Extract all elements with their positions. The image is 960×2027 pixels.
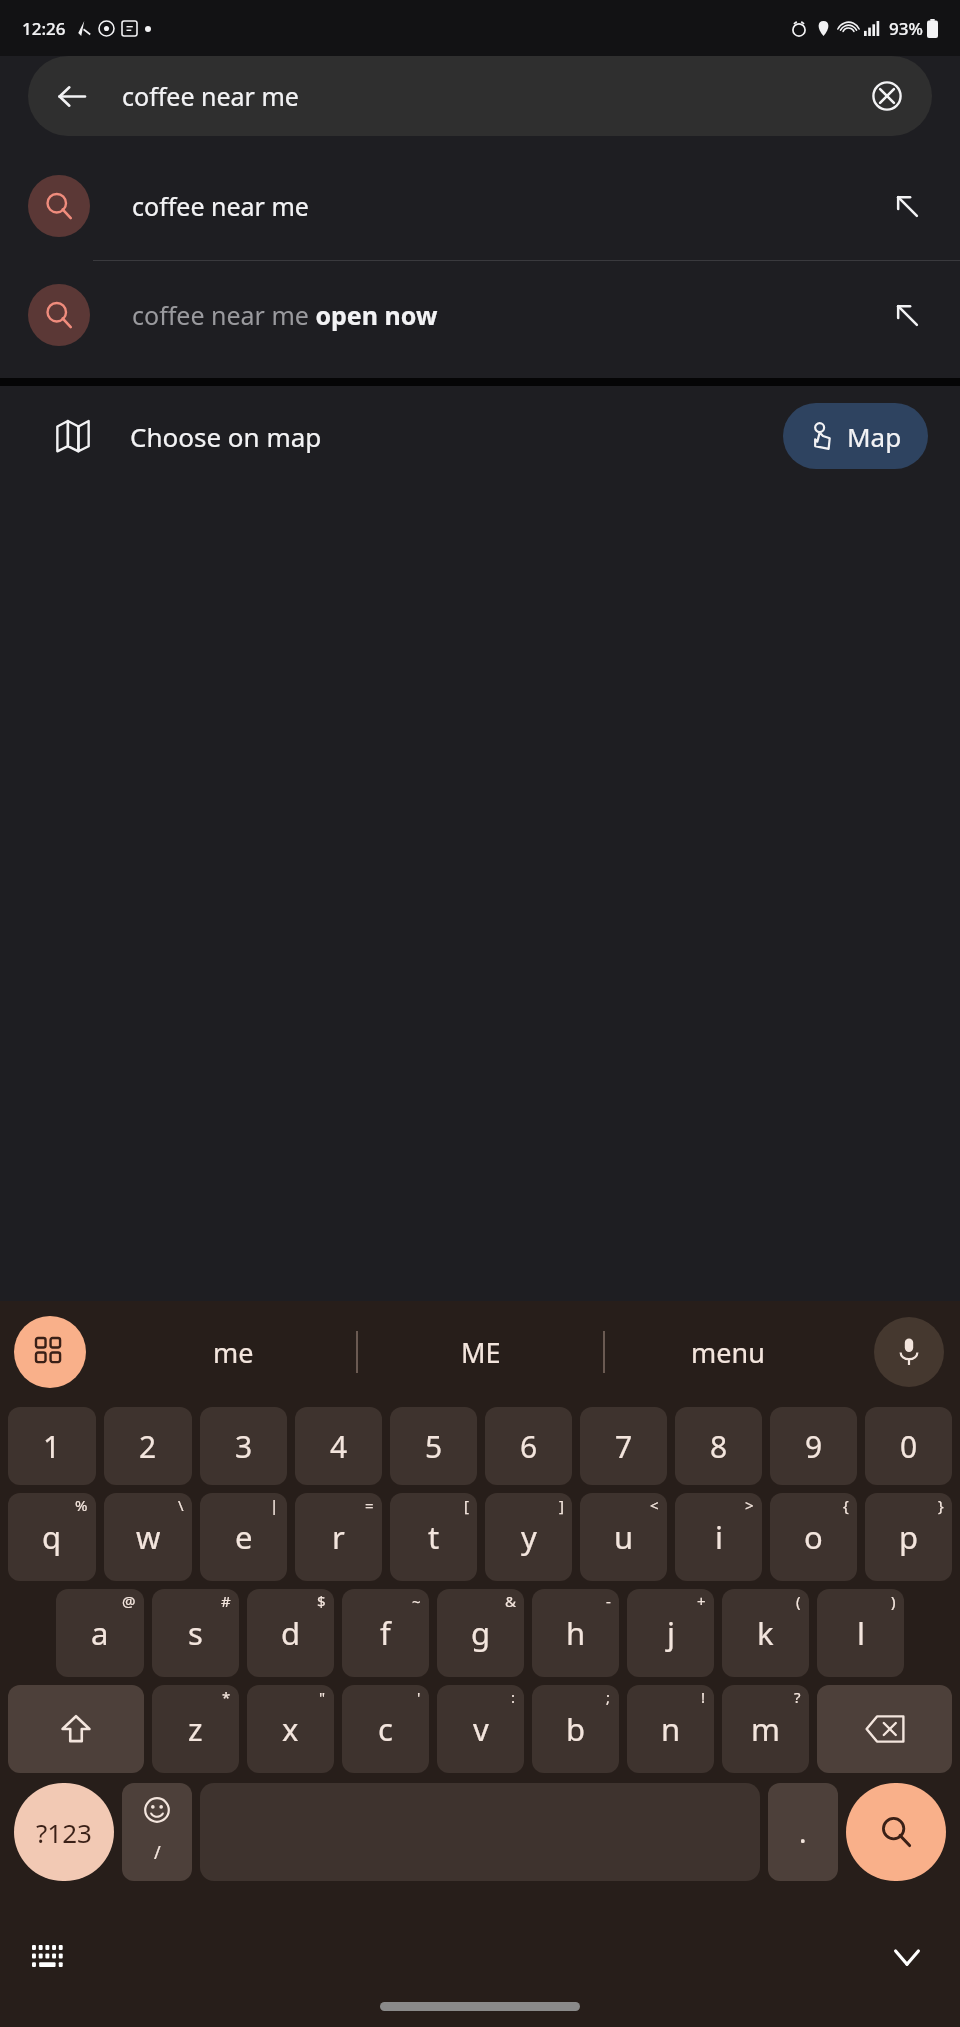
staticText: [ (464, 1495, 469, 1515)
button[interactable]: Emoji (122, 1783, 192, 1881)
button[interactable]: Clear query (860, 69, 914, 123)
staticText: k (757, 1612, 774, 1654)
staticText: 93% (889, 17, 923, 40)
button[interactable]: b (532, 1685, 619, 1773)
button[interactable]: c (342, 1685, 429, 1773)
staticText: 12:26 (22, 17, 66, 40)
button[interactable]: 9 (770, 1407, 857, 1485)
button[interactable]: Back (28, 56, 932, 136)
button[interactable]: g (437, 1589, 524, 1677)
button[interactable]: 4 (295, 1407, 382, 1485)
staticText: 6 (520, 1426, 538, 1467)
staticText: r (332, 1516, 345, 1558)
button[interactable]: 8 (675, 1407, 762, 1485)
button[interactable]: Switch keyboard (20, 1928, 78, 1986)
staticText: m (751, 1708, 780, 1750)
staticText: < (650, 1495, 659, 1515)
button[interactable]: i (675, 1493, 762, 1581)
staticText: 0 (900, 1426, 918, 1467)
button[interactable]: 7 (580, 1407, 667, 1485)
staticText: l (857, 1612, 865, 1654)
button[interactable]: e (200, 1493, 287, 1581)
button[interactable]: Choose on map (0, 386, 960, 486)
button[interactable]: Voice input (874, 1317, 944, 1387)
button[interactable]: ?123 (14, 1783, 114, 1881)
button[interactable]: Shift (8, 1685, 144, 1773)
staticText: h (566, 1612, 586, 1654)
staticText: ( (796, 1591, 801, 1611)
button[interactable]: 1 (8, 1407, 96, 1485)
staticText: g (471, 1612, 491, 1654)
button[interactable]: x (247, 1685, 334, 1773)
staticText: ) (891, 1591, 896, 1611)
button[interactable]: . (768, 1783, 838, 1881)
staticText: coffee near me open now (132, 298, 878, 332)
staticText: d (281, 1612, 301, 1654)
staticText: ; (606, 1687, 611, 1707)
staticText: $ (317, 1591, 326, 1611)
button[interactable]: f (342, 1589, 429, 1677)
button[interactable]: h (532, 1589, 619, 1677)
button[interactable]: n (627, 1685, 714, 1773)
staticText: 9 (805, 1426, 823, 1467)
button[interactable]: a (56, 1589, 144, 1677)
button[interactable]: o (770, 1493, 857, 1581)
button[interactable]: u (580, 1493, 667, 1581)
staticText: p (899, 1516, 919, 1558)
staticText: a (91, 1612, 109, 1654)
staticText: t (428, 1516, 440, 1558)
staticText: ME (461, 1334, 501, 1371)
staticText: : (511, 1687, 516, 1707)
button[interactable]: 0 (865, 1407, 952, 1485)
button[interactable]: y (485, 1493, 572, 1581)
button[interactable]: Map (783, 403, 928, 469)
button[interactable]: Search (846, 1783, 946, 1881)
staticText: coffee near me (132, 189, 878, 223)
staticText: - (606, 1591, 611, 1611)
button[interactable]: l (817, 1589, 904, 1677)
staticText: 2 (139, 1426, 157, 1467)
button[interactable]: 2 (104, 1407, 192, 1485)
button[interactable]: z (152, 1685, 239, 1773)
button[interactable]: coffee near me open now (0, 261, 960, 369)
button[interactable]: Insert suggestion (878, 286, 936, 344)
button[interactable]: Insert suggestion (878, 177, 936, 235)
button[interactable]: r (295, 1493, 382, 1581)
button[interactable]: Back (42, 67, 100, 125)
button[interactable]: m (722, 1685, 809, 1773)
staticText: me (213, 1334, 254, 1371)
staticText: c (378, 1708, 393, 1750)
button[interactable]: coffee near me (0, 152, 960, 260)
button[interactable]: w (104, 1493, 192, 1581)
button[interactable]: me (110, 1301, 356, 1403)
staticText: coffee near me (122, 79, 299, 113)
staticText: / (154, 1840, 161, 1865)
staticText: x (282, 1708, 299, 1750)
staticText: 1 (43, 1426, 61, 1467)
button[interactable]: v (437, 1685, 524, 1773)
button[interactable]: Hide keyboard (876, 1926, 938, 1988)
button[interactable]: Keyboard tools (14, 1316, 86, 1388)
staticText: e (235, 1516, 253, 1558)
button[interactable]: 5 (390, 1407, 477, 1485)
button[interactable]: 6 (485, 1407, 572, 1485)
button[interactable]: p (865, 1493, 952, 1581)
button[interactable]: j (627, 1589, 714, 1677)
button[interactable]: d (247, 1589, 334, 1677)
staticText: 3 (235, 1426, 253, 1467)
staticText: 4 (330, 1426, 348, 1467)
button[interactable]: t (390, 1493, 477, 1581)
button[interactable]: q (8, 1493, 96, 1581)
staticText: . (799, 1813, 807, 1851)
button[interactable]: ME (358, 1301, 603, 1403)
button[interactable]: 3 (200, 1407, 287, 1485)
staticText: > (745, 1495, 754, 1515)
staticText: 7 (615, 1426, 633, 1467)
button[interactable]: s (152, 1589, 239, 1677)
button[interactable]: Backspace (817, 1685, 952, 1773)
button[interactable]: k (722, 1589, 809, 1677)
button[interactable]: menu (605, 1301, 850, 1403)
staticText: n (661, 1708, 681, 1750)
staticText: \ (178, 1495, 184, 1515)
